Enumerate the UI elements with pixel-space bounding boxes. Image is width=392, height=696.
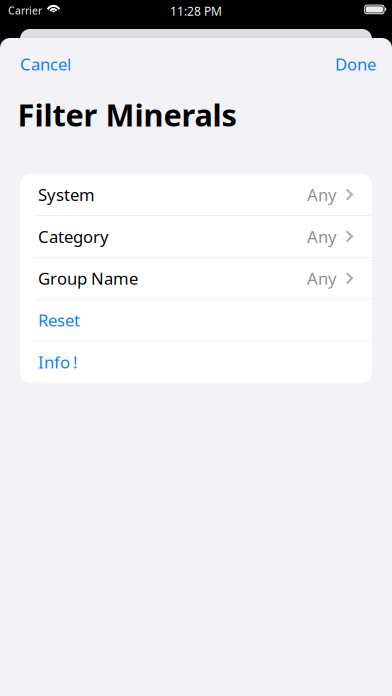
staticText: Reset (38, 309, 80, 331)
staticText: Filter Minerals (17, 94, 236, 135)
staticText: Any (307, 183, 337, 206)
staticText: 11:28 PM (170, 3, 222, 19)
button[interactable]: Info ! (20, 341, 372, 382)
staticText: Done (335, 53, 376, 75)
button[interactable]: Group Name (20, 258, 372, 299)
button[interactable]: System (20, 174, 372, 215)
staticText: Category (38, 225, 109, 248)
staticText: Any (307, 225, 337, 248)
staticText: Cancel (20, 53, 71, 75)
button[interactable]: Category (20, 216, 372, 257)
staticText: Carrier (8, 3, 42, 18)
staticText: Any (307, 267, 337, 290)
button[interactable]: Reset (20, 300, 372, 341)
staticText: Group Name (38, 267, 138, 290)
button[interactable]: Done (325, 38, 392, 90)
button[interactable]: Cancel (0, 38, 81, 90)
staticText: Info ! (38, 351, 77, 373)
staticText: System (38, 183, 95, 206)
